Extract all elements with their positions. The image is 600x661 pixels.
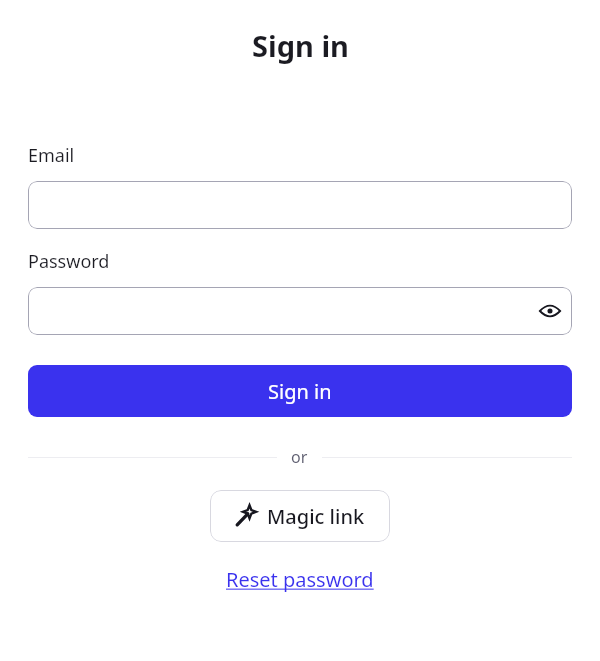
staticText: or bbox=[291, 446, 308, 468]
button[interactable]: Show password bbox=[28, 287, 572, 335]
staticText: Magic link bbox=[267, 503, 365, 530]
button[interactable]: Sign in bbox=[28, 365, 572, 417]
button[interactable] bbox=[28, 181, 572, 229]
staticText: Reset password bbox=[226, 566, 374, 593]
staticText: Sign in bbox=[268, 378, 332, 405]
staticText: Sign in bbox=[252, 26, 349, 65]
button[interactable]: Show password bbox=[528, 289, 572, 333]
staticText: Email bbox=[28, 143, 75, 168]
button[interactable]: Magic link bbox=[210, 490, 390, 542]
staticText: Password bbox=[28, 249, 110, 274]
button[interactable]: Reset password bbox=[220, 564, 380, 595]
